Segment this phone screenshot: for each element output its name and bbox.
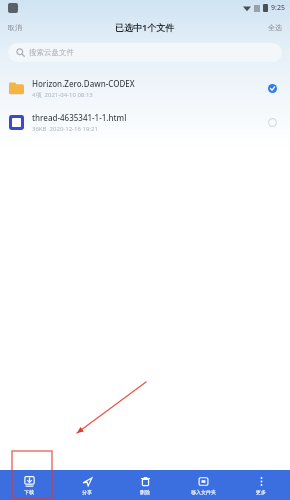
staticText: 4项 2021-04-10 08:13: [32, 91, 93, 99]
staticText: 删除: [140, 489, 150, 495]
button[interactable]: 移入文件夹: [174, 470, 232, 500]
button[interactable]: 搜索云盘文件: [8, 43, 282, 62]
staticText: 移入文件夹: [191, 489, 216, 495]
button[interactable]: thread-4635341-1-1.html: [0, 105, 290, 139]
staticText: 已选中1个文件: [115, 21, 175, 33]
button[interactable]: 删除: [116, 470, 174, 500]
staticText: 更多: [256, 489, 266, 495]
staticText: 9:25: [271, 3, 285, 13]
staticText: 搜索云盘文件: [29, 48, 74, 57]
button[interactable]: 分享: [58, 470, 116, 500]
button[interactable]: 取消: [0, 19, 30, 36]
staticText: 全选: [268, 23, 282, 32]
button[interactable]: Horizon.Zero.Dawn-CODEX: [0, 71, 290, 105]
staticText: 取消: [8, 23, 22, 32]
staticText: 下载: [24, 489, 34, 495]
button[interactable]: Not selected: [263, 113, 281, 131]
button[interactable]: Selected: [263, 79, 281, 97]
button[interactable]: 全选: [260, 19, 290, 36]
staticText: 36KB 2020-12-16 19:21: [32, 125, 98, 133]
staticText: 分享: [82, 489, 92, 495]
button[interactable]: 更多: [232, 470, 290, 500]
staticText: thread-4635341-1-1.html: [32, 112, 127, 123]
button[interactable]: 下载: [0, 470, 58, 500]
staticText: Horizon.Zero.Dawn-CODEX: [32, 78, 135, 89]
